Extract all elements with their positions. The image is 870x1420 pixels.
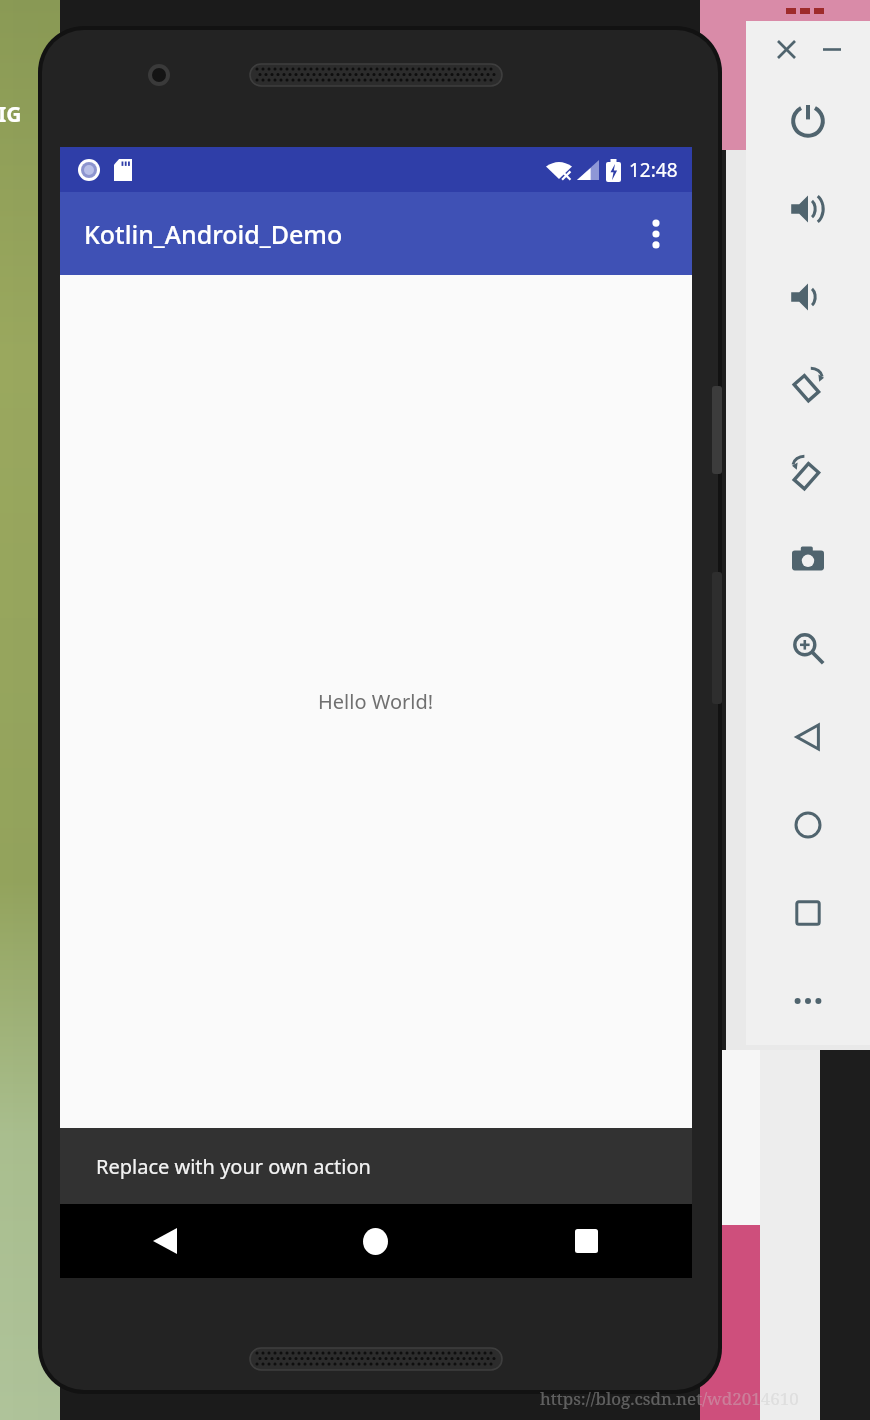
button[interactable]: More options: [632, 210, 680, 258]
button[interactable]: Back: [778, 707, 838, 767]
staticText: Hello World!: [318, 688, 434, 715]
staticText: https://blog.csdn.net/wd2014610: [540, 1387, 799, 1410]
button[interactable]: Minimize: [814, 31, 850, 67]
button[interactable]: Overview: [778, 883, 838, 943]
staticText: Kotlin_Android_Demo: [84, 217, 343, 251]
button[interactable]: Send email: [584, 1143, 668, 1227]
button[interactable]: Take screenshot: [778, 530, 838, 590]
button[interactable]: Back: [60, 1204, 270, 1278]
button[interactable]: Power: [778, 91, 838, 151]
button[interactable]: Home: [270, 1204, 481, 1278]
button[interactable]: Zoom: [778, 618, 838, 678]
button[interactable]: More: [778, 971, 838, 1031]
button[interactable]: Home: [778, 795, 838, 855]
button[interactable]: Volume up: [778, 179, 838, 239]
staticText: IG: [0, 100, 22, 129]
staticText: Replace with your own action: [96, 1153, 371, 1180]
button[interactable]: Rotate right: [778, 443, 838, 503]
button[interactable]: Replace with your own action: [60, 1128, 692, 1204]
button[interactable]: Close: [768, 31, 804, 67]
button[interactable]: Rotate left: [778, 355, 838, 415]
button[interactable]: Recent apps: [481, 1204, 692, 1278]
staticText: 12:48: [629, 157, 678, 183]
button[interactable]: Volume down: [778, 267, 838, 327]
